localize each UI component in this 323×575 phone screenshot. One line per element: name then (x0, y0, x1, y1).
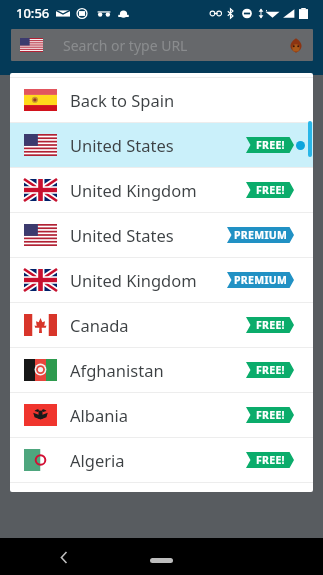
staticText: United States (70, 134, 174, 156)
staticText: Back to Spain (70, 89, 175, 111)
staticText: United States (70, 224, 174, 246)
staticText: FREE! (256, 408, 285, 422)
staticText: FREE! (256, 453, 285, 467)
staticText: Algeria (70, 449, 125, 471)
staticText: Afghanistan (70, 359, 164, 381)
staticText: PREMIUM (234, 228, 288, 242)
button[interactable]: United States (10, 213, 313, 257)
button[interactable]: United Kingdom (10, 168, 313, 212)
staticText: Canada (70, 314, 129, 336)
button[interactable]: Afghanistan (10, 348, 313, 392)
staticText: United Kingdom (70, 269, 197, 291)
staticText: FREE! (256, 363, 285, 377)
button[interactable]: Back (54, 547, 74, 567)
staticText: United Kingdom (70, 179, 197, 201)
staticText: FREE! (256, 138, 285, 152)
staticText: FREE! (256, 183, 285, 197)
button[interactable]: Back to Spain (10, 78, 313, 122)
staticText: FREE! (256, 318, 285, 332)
staticText: Albania (70, 404, 128, 426)
button[interactable]: Home (150, 558, 173, 563)
button[interactable]: United States (10, 123, 313, 167)
staticText: Search or type URL (63, 36, 188, 55)
staticText: PREMIUM (234, 273, 288, 287)
button[interactable]: Search the country (10, 73, 313, 77)
button[interactable]: Algeria (10, 438, 313, 482)
staticText: 10:56 (16, 4, 50, 22)
button[interactable]: United Kingdom (10, 258, 313, 302)
button[interactable]: Search or type URL (11, 29, 313, 61)
button[interactable]: Canada (10, 303, 313, 347)
button[interactable]: Albania (10, 393, 313, 437)
